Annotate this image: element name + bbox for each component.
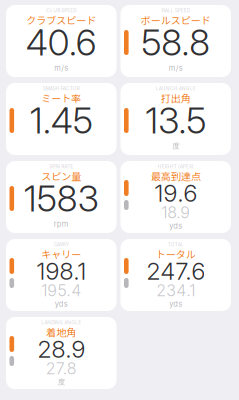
staticText: rpm (54, 219, 69, 228)
staticText: トータル (156, 247, 196, 261)
staticText: 19.6 (154, 178, 197, 207)
button[interactable]: HEIGHT (APEX) (120, 161, 231, 233)
staticText: キャリー (41, 247, 81, 261)
button[interactable]: SMASH FACTOR (6, 83, 116, 155)
staticText: LANDING ANGLE (41, 320, 81, 325)
button[interactable]: CARRY (6, 239, 116, 311)
staticText: ミート率 (41, 91, 81, 105)
staticText: 58.8 (141, 21, 210, 64)
staticText: 度 (58, 377, 65, 387)
staticText: LAUNCH ANGLE (156, 86, 196, 91)
staticText: 40.6 (26, 21, 97, 64)
staticText: 着地角 (46, 325, 76, 339)
button[interactable]: LAUNCH ANGLE (120, 83, 231, 155)
staticText: HEIGHT (APEX) (158, 164, 194, 169)
button[interactable]: CLUB SPEED (6, 5, 116, 77)
staticText: 18.9 (161, 203, 190, 222)
staticText: TOTAL (168, 242, 184, 247)
staticText: m/s (169, 63, 183, 72)
staticText: 234.1 (156, 281, 195, 300)
staticText: yds (55, 299, 68, 308)
button[interactable]: SPIN RATE (6, 161, 116, 233)
staticText: 198.1 (36, 256, 86, 285)
button[interactable]: TOTAL (120, 239, 231, 311)
staticText: 27.8 (46, 359, 77, 378)
staticText: yds (169, 221, 182, 230)
staticText: 1.45 (30, 99, 93, 142)
staticText: SMASH FACTOR (43, 86, 80, 91)
staticText: CLUB SPEED (46, 8, 76, 13)
staticText: 195.4 (41, 281, 81, 300)
staticText: BALL SPEED (162, 8, 190, 13)
button[interactable]: LANDING ANGLE (6, 317, 116, 389)
staticText: 最高到達点 (151, 169, 201, 183)
staticText: 28.9 (37, 334, 85, 363)
staticText: 1583 (24, 177, 99, 220)
staticText: m/s (54, 63, 68, 72)
staticText: 13.5 (145, 99, 206, 142)
staticText: 247.6 (146, 256, 205, 285)
staticText: CARRY (54, 242, 69, 247)
staticText: 度 (172, 141, 179, 151)
staticText: ボールスピード (141, 13, 211, 27)
button[interactable]: BALL SPEED (120, 5, 231, 77)
staticText: クラブスピード (26, 13, 96, 27)
staticText: SPIN RATE (49, 164, 73, 169)
staticText: yds (169, 299, 182, 308)
staticText: スピン量 (41, 169, 81, 183)
staticText: 打出角 (161, 91, 191, 105)
